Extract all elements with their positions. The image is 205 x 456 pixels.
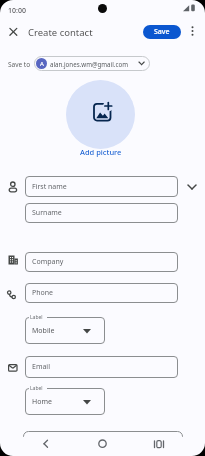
staticText: Company bbox=[32, 257, 64, 267]
button[interactable] bbox=[4, 24, 22, 40]
staticText: Add picture bbox=[80, 147, 122, 157]
button[interactable]: Home bbox=[25, 388, 105, 415]
button[interactable]: Email bbox=[25, 356, 178, 378]
button[interactable]: Phone bbox=[25, 283, 178, 303]
button[interactable] bbox=[186, 23, 200, 39]
staticText: Label bbox=[30, 314, 43, 321]
staticText: Label bbox=[30, 385, 43, 392]
staticText: alan.jones.wm@gmail.com bbox=[50, 60, 128, 68]
button[interactable]: Mobile bbox=[25, 317, 105, 344]
staticText: Home bbox=[32, 397, 52, 407]
staticText: Save bbox=[154, 27, 170, 37]
button[interactable]: A bbox=[34, 56, 150, 71]
staticText: Create contact bbox=[28, 26, 93, 39]
button[interactable]: Add picture bbox=[60, 146, 141, 158]
button[interactable]: Save bbox=[143, 25, 181, 39]
staticText: First name bbox=[32, 182, 67, 192]
staticText: Surname bbox=[32, 208, 62, 218]
button[interactable]: Company bbox=[25, 252, 178, 272]
staticText: Save to bbox=[8, 60, 31, 69]
staticText: A bbox=[40, 60, 44, 68]
button[interactable]: Surname bbox=[25, 203, 178, 223]
button[interactable] bbox=[34, 434, 58, 454]
staticText: Phone bbox=[32, 288, 54, 298]
staticText: Email bbox=[32, 362, 50, 372]
button[interactable] bbox=[90, 434, 115, 454]
button[interactable] bbox=[66, 80, 135, 149]
button[interactable]: First name bbox=[25, 176, 178, 197]
staticText: Mobile bbox=[32, 326, 55, 336]
button[interactable] bbox=[182, 178, 202, 196]
staticText: 10:00 bbox=[8, 6, 26, 16]
button[interactable] bbox=[146, 434, 171, 454]
